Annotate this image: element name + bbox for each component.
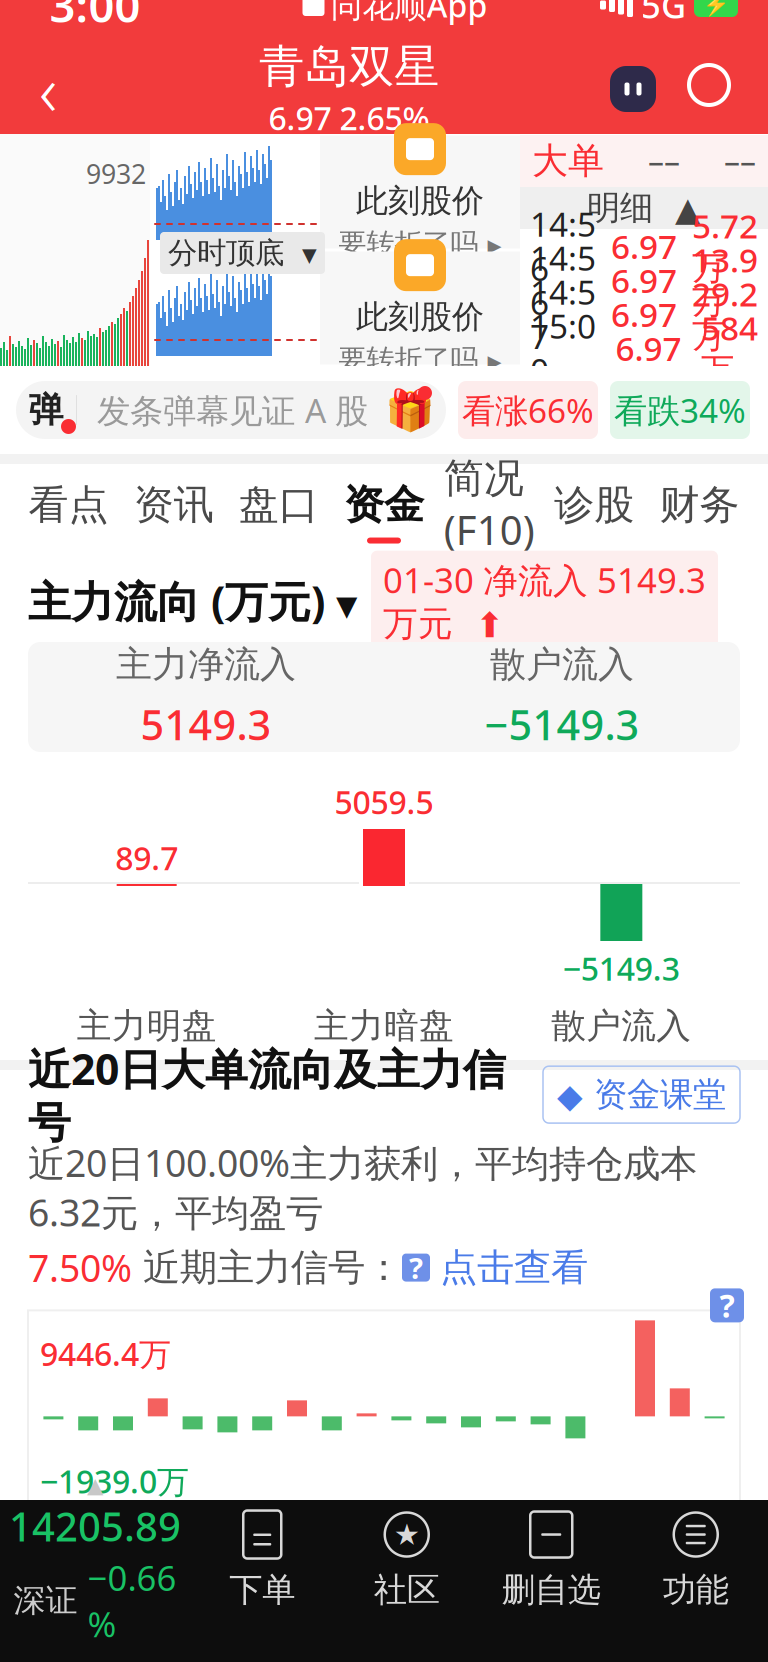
- staticText: ?: [719, 1284, 734, 1327]
- staticText: 低: [369, 195, 398, 231]
- button[interactable]: 诊股: [542, 469, 647, 555]
- staticText: 此刻股价: [356, 297, 484, 336]
- staticText: 14:56: [530, 202, 596, 290]
- staticText: 要转折了吗 ▸: [338, 342, 501, 377]
- staticText: 分时顶底 ▾: [168, 235, 317, 271]
- button[interactable]: 看涨66%: [458, 381, 598, 439]
- staticText: 删自选: [502, 1569, 601, 1610]
- staticText: 看跌34%: [614, 388, 746, 432]
- staticText: 财务: [659, 480, 739, 529]
- staticText: 6.97: [611, 258, 677, 302]
- staticText: 明细 ▲: [587, 187, 701, 228]
- button[interactable]: 01-30 净流入 5149.3 万元 ⬆: [371, 551, 718, 651]
- staticText: 584万: [701, 305, 758, 391]
- staticText: 散户流入: [551, 1005, 691, 1047]
- button[interactable]: 说明: [710, 1288, 744, 1322]
- staticText: 14:56: [530, 236, 596, 324]
- staticText: ⚡: [702, 0, 729, 17]
- button[interactable]: ▲: [0, 1505, 190, 1615]
- button[interactable]: 主力流向 (万元) ▾: [28, 573, 357, 629]
- staticText: 同花顺App: [330, 0, 487, 26]
- staticText: 主力净流入: [116, 642, 296, 687]
- staticText: 29.2万: [692, 271, 758, 357]
- staticText: 5G: [641, 0, 686, 28]
- staticText: −1939.0万: [40, 1460, 189, 1502]
- staticText: 深证: [13, 1581, 77, 1620]
- staticText: 14205.89: [9, 1499, 181, 1553]
- staticText: 诊股: [554, 480, 634, 529]
- button[interactable]: 返回: [0, 44, 96, 134]
- staticText: 14:57: [530, 270, 596, 358]
- staticText: 01-30 净流入 5149.3 万元 ⬆: [383, 557, 706, 645]
- staticText: ––: [724, 140, 756, 182]
- staticText: 6.97: [615, 326, 681, 370]
- staticText: 看点: [29, 480, 109, 529]
- staticText: 近20日100.00%主力获利，平均持仓成本6.32元，平均盈亏: [28, 1138, 697, 1237]
- staticText: 近20日大单流向及主力信号: [28, 1040, 506, 1149]
- button[interactable]: 此刻股价: [320, 135, 520, 248]
- button[interactable]: 下单: [190, 1505, 334, 1615]
- staticText: 主力明盘: [77, 1005, 217, 1047]
- staticText: ‹: [39, 43, 57, 135]
- staticText: 青岛双星: [259, 39, 439, 95]
- staticText: 点击查看: [440, 1245, 588, 1290]
- staticText: 资讯: [134, 480, 214, 529]
- staticText: −5149.3: [484, 697, 639, 752]
- button[interactable]: 删自选: [479, 1505, 623, 1615]
- staticText: 9932: [86, 156, 146, 191]
- staticText: ––: [648, 140, 680, 182]
- button[interactable]: 资讯: [121, 469, 226, 555]
- button[interactable]: 智能助手: [602, 49, 664, 129]
- staticText: 看涨66%: [462, 388, 594, 432]
- staticText: 此刻股价: [356, 181, 484, 220]
- button[interactable]: ◆ 资金课堂: [543, 1066, 740, 1123]
- staticText: 资金: [344, 480, 424, 529]
- staticText: ★: [394, 1518, 420, 1551]
- button[interactable]: 财务: [647, 469, 752, 555]
- staticText: 高: [369, 311, 398, 347]
- staticText: 散户流入: [490, 642, 634, 687]
- button[interactable]: ★: [334, 1505, 479, 1615]
- button[interactable]: 功能: [623, 1505, 768, 1615]
- staticText: 🎁: [385, 387, 435, 433]
- button[interactable]: ?: [402, 1245, 588, 1290]
- staticText: 5059.5: [334, 780, 433, 823]
- button[interactable]: 看跌34%: [610, 381, 750, 439]
- button[interactable]: 弹: [16, 381, 446, 439]
- staticText: 9446.4万: [40, 1332, 171, 1375]
- button[interactable]: 此刻股价: [320, 251, 520, 364]
- staticText: 3:00: [49, 0, 140, 35]
- staticText: 大单: [532, 139, 604, 183]
- staticText: 盘口: [239, 480, 319, 529]
- button[interactable]: 搜索: [682, 49, 744, 129]
- staticText: 6.97: [611, 224, 677, 268]
- staticText: 5.72万: [692, 203, 758, 289]
- staticText: ▲: [87, 1473, 103, 1497]
- staticText: 功能: [663, 1569, 729, 1610]
- staticText: −0.66%: [87, 1555, 176, 1647]
- staticText: 下单: [229, 1569, 295, 1610]
- staticText: 要转折了吗 ▸: [338, 226, 501, 261]
- staticText: 13.9万: [692, 237, 758, 323]
- staticText: 简况(F10): [444, 454, 535, 556]
- staticText: 6.97 2.65%: [268, 97, 429, 139]
- staticText: 5149.3: [140, 697, 271, 752]
- staticText: 发条弹幕见证 A 股: [97, 388, 368, 432]
- staticText: 主力流向 (万元) ▾: [28, 573, 357, 629]
- button[interactable]: 看点: [16, 469, 121, 555]
- staticText: 7.50%: [28, 1243, 132, 1292]
- staticText: −5149.3: [563, 947, 680, 989]
- button[interactable]: 资金: [331, 469, 436, 555]
- staticText: 近期主力信号：: [132, 1245, 402, 1290]
- staticText: 社区: [374, 1569, 440, 1610]
- button[interactable]: 盘口: [226, 469, 331, 555]
- staticText: 89.7: [115, 836, 178, 879]
- staticText: 弹: [28, 389, 63, 431]
- staticText: ◆ 资金课堂: [557, 1074, 726, 1115]
- staticText: 6.97: [611, 292, 677, 336]
- staticText: 主力暗盘: [314, 1005, 454, 1047]
- staticText: 15:00: [530, 304, 596, 392]
- staticText: ?: [409, 1248, 423, 1287]
- button[interactable]: 简况(F10): [437, 469, 542, 555]
